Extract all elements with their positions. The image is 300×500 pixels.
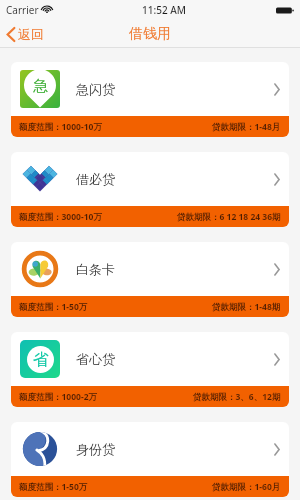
staticText: 贷款期限：3、6、12期 <box>193 391 281 403</box>
staticText: 额度范围：1000-2万 <box>19 391 98 403</box>
button[interactable]: 身份贷 <box>11 422 289 497</box>
staticText: 省 <box>33 350 49 370</box>
staticText: Carrier <box>6 3 39 17</box>
staticText: 急 <box>33 77 48 96</box>
staticText: 额度范围：3000-10万 <box>19 211 102 223</box>
button[interactable]: 省 <box>11 332 289 407</box>
staticText: 贷款期限：1-48月 <box>212 121 281 133</box>
staticText: 省心贷 <box>76 351 115 367</box>
staticText: 急闪贷 <box>76 81 115 97</box>
staticText: 返回 <box>18 26 44 42</box>
staticText: 贷款期限：6 12 18 24 36期 <box>177 211 281 223</box>
staticText: 额度范围：1-50万 <box>19 301 88 313</box>
staticText: 借必贷 <box>76 171 115 187</box>
button[interactable]: 返回 <box>0 23 51 45</box>
staticText: 额度范围：1-50万 <box>19 481 88 493</box>
button[interactable]: 急 <box>11 62 289 137</box>
staticText: 贷款期限：1-60月 <box>212 481 281 493</box>
button[interactable]: 借必贷 <box>11 152 289 227</box>
staticText: 11:52 AM <box>142 3 186 17</box>
staticText: 身份贷 <box>76 441 115 457</box>
staticText: 贷款期限：1-48期 <box>212 301 281 313</box>
staticText: 白条卡 <box>76 261 115 277</box>
staticText: 额度范围：1000-10万 <box>19 121 102 133</box>
button[interactable]: 白条卡 <box>11 242 289 317</box>
staticText: 借钱用 <box>129 25 171 43</box>
